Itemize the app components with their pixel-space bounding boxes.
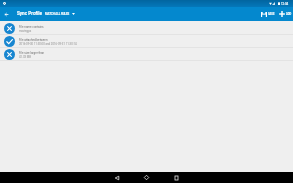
staticText: ADD — [286, 13, 292, 16]
staticText: 2016-09-30 11:30:00 and 2016-09-31 11:30… — [19, 42, 77, 45]
button[interactable]: Navigate up — [0, 7, 13, 21]
button[interactable]: Home — [139, 172, 154, 183]
button[interactable]: SAVE — [259, 10, 276, 19]
button[interactable]: File size larger than — [0, 48, 293, 60]
staticText: MATCH ALL RULES — [45, 12, 70, 15]
staticText: Sync Profile — [17, 11, 42, 16]
button[interactable]: ADD — [278, 9, 293, 19]
staticText: File attached between — [19, 38, 48, 41]
button[interactable]: MATCH ALL RULES — [45, 11, 75, 18]
button[interactable]: File attached between — [0, 35, 293, 47]
staticText: 41.33 MB — [19, 55, 31, 58]
button[interactable]: File name contains — [0, 22, 293, 34]
staticText: File size larger than — [19, 51, 45, 54]
button[interactable]: Back — [109, 172, 124, 183]
staticText: moviegps — [19, 29, 32, 32]
button[interactable]: Recent apps — [169, 172, 184, 183]
staticText: 12:04 — [281, 2, 289, 5]
staticText: SAVE — [268, 13, 275, 16]
staticText: File name contains — [19, 25, 44, 28]
